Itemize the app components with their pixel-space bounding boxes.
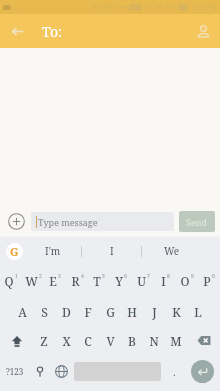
button[interactable]: C	[77, 326, 99, 355]
staticText: .	[173, 365, 176, 379]
button[interactable]: Voice input	[29, 355, 50, 388]
staticText: X	[62, 333, 71, 349]
staticText: Type message	[38, 216, 98, 228]
button[interactable]: I	[154, 264, 176, 297]
staticText: 0	[212, 273, 215, 280]
staticText: C	[84, 333, 92, 349]
staticText: P	[203, 273, 211, 289]
button[interactable]: Add attachment	[5, 210, 27, 232]
staticText: We	[164, 244, 180, 258]
button[interactable]: D	[55, 297, 77, 326]
staticText: N	[149, 333, 159, 349]
button[interactable]: P	[198, 264, 220, 297]
button[interactable]: R	[66, 264, 88, 297]
button[interactable]: K	[165, 297, 187, 326]
staticText: V	[106, 333, 115, 349]
staticText: 45%	[165, 3, 177, 11]
staticText: 6	[124, 273, 127, 280]
staticText: A	[18, 304, 27, 320]
button[interactable]: V	[99, 326, 121, 355]
button[interactable]: U	[132, 264, 154, 297]
button[interactable]: I	[82, 238, 142, 264]
staticText: G	[10, 244, 19, 259]
staticText: W	[25, 273, 38, 289]
staticText: 2:53 PM	[192, 3, 217, 12]
button[interactable]: Enter	[191, 360, 214, 383]
staticText: 1	[15, 273, 18, 280]
button[interactable]: B	[121, 326, 143, 355]
staticText: D	[62, 304, 71, 320]
button[interactable]: We	[142, 238, 202, 264]
button[interactable]: Send	[179, 211, 215, 232]
staticText: R	[71, 273, 80, 289]
staticText: ?123	[6, 366, 24, 377]
staticText: I'm	[45, 244, 61, 258]
button[interactable]: Shift	[0, 326, 33, 355]
staticText: I	[110, 244, 114, 258]
staticText: 4	[81, 273, 84, 280]
button[interactable]: H	[121, 297, 143, 326]
button[interactable]: G	[99, 297, 121, 326]
staticText: S	[41, 304, 48, 320]
staticText: H	[127, 304, 137, 320]
button[interactable]: L	[187, 297, 209, 326]
button[interactable]: Y	[110, 264, 132, 297]
button[interactable]: T	[88, 264, 110, 297]
staticText: Q	[4, 273, 14, 289]
staticText: G	[106, 304, 115, 320]
staticText: 7	[147, 273, 150, 280]
button[interactable]: Contacts	[186, 14, 220, 48]
button[interactable]: A	[11, 297, 33, 326]
staticText: T	[93, 273, 101, 289]
staticText: O	[180, 273, 190, 289]
staticText: 3	[58, 273, 61, 280]
staticText: Z	[40, 333, 48, 349]
staticText: K	[172, 304, 181, 320]
button[interactable]: Q	[0, 264, 22, 297]
staticText: U	[137, 273, 146, 289]
staticText: Y	[115, 273, 123, 289]
staticText: 24. 24.	[144, 3, 163, 11]
button[interactable]: Type message	[31, 212, 174, 231]
staticText: 5	[102, 273, 105, 280]
staticText: B	[128, 333, 136, 349]
staticText: J	[152, 304, 157, 320]
staticText: I	[161, 273, 166, 289]
button[interactable]: X	[55, 326, 77, 355]
button[interactable]: F	[77, 297, 99, 326]
staticText: 8	[167, 273, 170, 280]
button[interactable]: Z	[33, 326, 55, 355]
staticText: 9	[191, 273, 194, 280]
button[interactable]: I'm	[23, 238, 82, 264]
staticText: F	[84, 304, 92, 320]
button[interactable]: Back	[0, 14, 34, 48]
button[interactable]: M	[165, 326, 187, 355]
button[interactable]: E	[44, 264, 66, 297]
button[interactable]: O	[176, 264, 198, 297]
button[interactable]: ?123	[0, 355, 29, 388]
button[interactable]: J	[143, 297, 165, 326]
staticText: To:	[42, 22, 62, 41]
button[interactable]: Backspace	[187, 326, 220, 355]
staticText: Send	[186, 216, 208, 228]
button[interactable]: W	[22, 264, 44, 297]
staticText: E	[49, 273, 57, 289]
button[interactable]: .	[163, 355, 185, 388]
button[interactable]: Google	[6, 243, 23, 260]
button[interactable]: Change language	[50, 355, 72, 388]
button[interactable]: N	[143, 326, 165, 355]
staticText: 4.05Kb/s	[93, 3, 118, 11]
staticText: L	[194, 304, 202, 320]
button[interactable]: S	[33, 297, 55, 326]
staticText: M	[170, 333, 182, 349]
staticText: 2	[39, 273, 42, 280]
